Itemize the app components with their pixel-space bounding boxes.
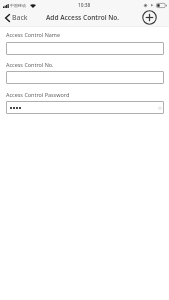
staticText: Access Control Password [6, 91, 70, 98]
staticText: 10:38 [78, 2, 91, 9]
button[interactable] [6, 71, 164, 84]
staticText: Access Control No. [6, 61, 54, 68]
button[interactable]: Add [142, 10, 157, 25]
staticText: Access Control Name [6, 31, 61, 38]
button[interactable]: Back [0, 12, 32, 24]
button[interactable]: Clear [6, 101, 164, 114]
staticText: 中国移动 [10, 3, 26, 8]
button[interactable] [6, 42, 164, 55]
staticText: Add Access Control No. [46, 13, 120, 22]
button[interactable]: Clear [158, 106, 162, 110]
staticText: Back [12, 13, 28, 23]
